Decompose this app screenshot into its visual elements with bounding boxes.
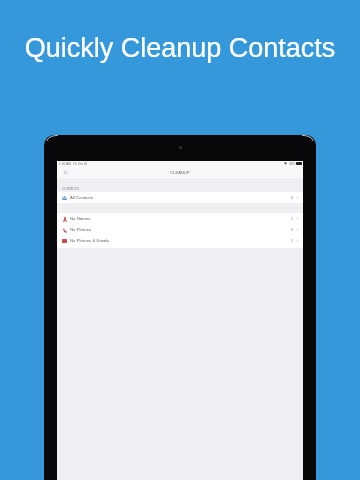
- staticText: 4: [291, 228, 293, 232]
- staticText: CLEANUP: [57, 170, 303, 175]
- button[interactable]: No Names: [57, 213, 303, 224]
- staticText: All Contacts: [70, 195, 93, 200]
- staticText: 1: [291, 217, 293, 221]
- staticText: 98%: [289, 162, 296, 166]
- staticText: 1:56 AM Fri Oct 26: [59, 162, 88, 166]
- button[interactable]: No Phones & Emails: [57, 235, 303, 246]
- staticText: 1: [291, 239, 293, 243]
- staticText: No Names: [70, 216, 91, 221]
- staticText: Quickly Cleanup Contacts: [0, 33, 360, 63]
- button[interactable]: Close: [61, 168, 69, 176]
- staticText: No Phones & Emails: [70, 238, 110, 243]
- button[interactable]: All Contacts: [57, 192, 303, 203]
- staticText: No Phones: [70, 227, 92, 232]
- staticText: CONTACTS: [62, 187, 79, 190]
- button[interactable]: No Phones: [57, 224, 303, 235]
- staticText: 8: [291, 196, 293, 200]
